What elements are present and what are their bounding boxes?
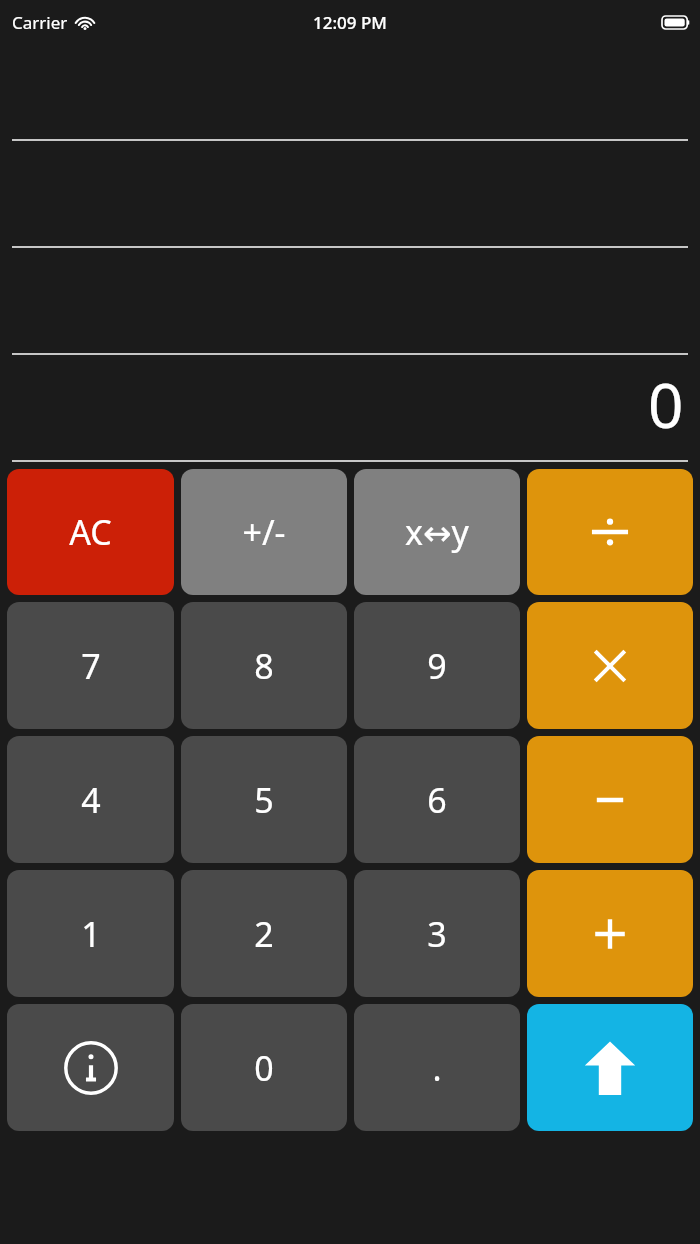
- staticText: Carrier: [12, 11, 68, 34]
- button[interactable]: +/-: [181, 469, 347, 595]
- button[interactable]: 8: [181, 602, 347, 729]
- staticText: 0: [254, 1045, 274, 1091]
- staticText: 8: [254, 643, 274, 689]
- button[interactable]: Enter: [527, 1004, 693, 1131]
- staticText: 12:09 PM: [313, 11, 387, 34]
- button[interactable]: 7: [7, 602, 174, 729]
- button[interactable]: Plus: [527, 870, 693, 997]
- staticText: 0: [648, 362, 684, 446]
- staticText: 5: [254, 777, 274, 823]
- staticText: +/-: [242, 509, 286, 555]
- button[interactable]: .: [354, 1004, 520, 1131]
- button[interactable]: Minus: [527, 736, 693, 863]
- button[interactable]: AC: [7, 469, 174, 595]
- button[interactable]: 0: [181, 1004, 347, 1131]
- button[interactable]: 3: [354, 870, 520, 997]
- staticText: 4: [81, 777, 101, 823]
- button[interactable]: Info: [7, 1004, 174, 1131]
- staticText: 3: [427, 911, 447, 957]
- button[interactable]: 4: [7, 736, 174, 863]
- button[interactable]: 6: [354, 736, 520, 863]
- staticText: 1: [81, 911, 101, 957]
- button[interactable]: 5: [181, 736, 347, 863]
- staticText: 9: [427, 643, 447, 689]
- staticText: .: [432, 1045, 442, 1091]
- button[interactable]: 9: [354, 602, 520, 729]
- staticText: 6: [427, 777, 447, 823]
- button[interactable]: Divide: [527, 469, 693, 595]
- button[interactable]: 1: [7, 870, 174, 997]
- staticText: AC: [69, 509, 112, 555]
- staticText: 7: [81, 643, 101, 689]
- button[interactable]: Multiply: [527, 602, 693, 729]
- staticText: 2: [254, 911, 274, 957]
- button[interactable]: x↔y: [354, 469, 520, 595]
- staticText: x↔y: [405, 509, 469, 555]
- button[interactable]: 2: [181, 870, 347, 997]
